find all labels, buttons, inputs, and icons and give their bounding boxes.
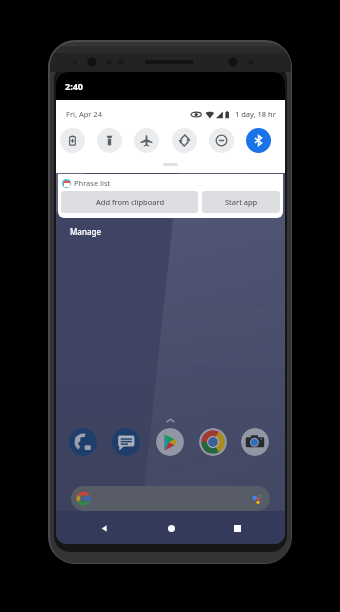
staticText: 2:40 xyxy=(65,80,83,92)
button[interactable]: Airplane mode xyxy=(134,128,159,153)
button[interactable]: Flashlight xyxy=(97,128,122,153)
button[interactable]: Camera xyxy=(241,428,269,456)
button[interactable]: Recents xyxy=(227,518,247,538)
staticText: Start app xyxy=(225,197,258,207)
button[interactable]: Search xyxy=(71,486,270,511)
button[interactable]: Play Store xyxy=(156,428,184,456)
staticText: Fri, Apr 24 xyxy=(66,109,102,119)
button[interactable]: Start app xyxy=(202,191,280,213)
button[interactable]: Home xyxy=(161,518,181,538)
button[interactable]: Bluetooth xyxy=(246,128,271,153)
staticText: Manage xyxy=(70,226,102,237)
staticText: Phrase list xyxy=(74,178,111,188)
button[interactable]: Phone xyxy=(69,428,97,456)
button[interactable]: Chrome xyxy=(199,428,227,456)
staticText: Add from clipboard xyxy=(96,197,164,207)
staticText: 1 day, 18 hr xyxy=(235,109,276,119)
button[interactable]: Back xyxy=(94,518,114,538)
button[interactable]: Messages xyxy=(112,428,140,456)
button[interactable]: Battery saver xyxy=(60,128,85,153)
button[interactable]: Add from clipboard xyxy=(61,191,198,213)
button[interactable]: Auto rotate xyxy=(172,128,197,153)
button[interactable]: Do not disturb xyxy=(209,128,234,153)
